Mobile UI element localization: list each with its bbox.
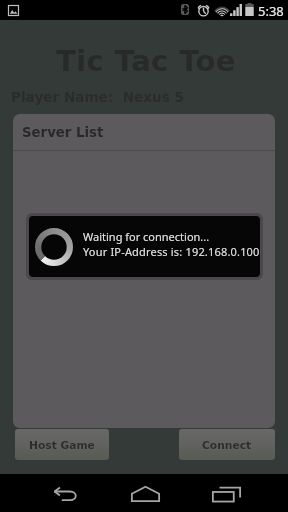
staticText: 5:38 (258, 2, 284, 20)
staticText: Your IP-Address is: 192.168.0.100 (83, 244, 260, 259)
button[interactable]: Recent apps (206, 474, 246, 512)
staticText: Player Name: Nexus 5 (11, 89, 185, 105)
button[interactable]: Back (44, 474, 84, 512)
staticText: Connect (202, 439, 252, 451)
button[interactable]: Home (125, 474, 165, 512)
staticText: Waiting for connection... (83, 229, 210, 244)
staticText: Host Game (29, 439, 95, 451)
button[interactable]: Server List (13, 114, 275, 150)
staticText: Tic Tac Toe (2, 44, 288, 78)
staticText: Server List (22, 125, 104, 140)
button[interactable]: Connect (179, 429, 275, 460)
button[interactable]: Host Game (15, 429, 109, 460)
